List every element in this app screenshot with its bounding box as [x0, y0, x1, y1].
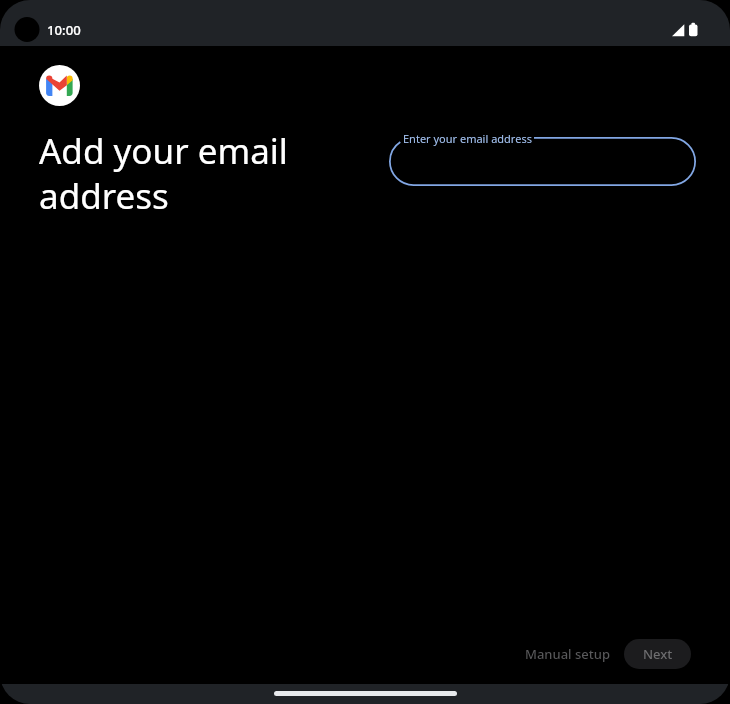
staticText: 10:00 — [47, 21, 81, 39]
staticText: Enter your email address — [403, 131, 532, 146]
button[interactable]: Next — [624, 639, 691, 669]
button[interactable]: Enter your email address — [389, 137, 696, 186]
staticText: Next — [643, 645, 673, 663]
button[interactable]: Manual setup — [514, 639, 621, 669]
button[interactable]: Home — [274, 691, 457, 696]
other: Gmail — [39, 65, 80, 106]
staticText: Add your email address — [39, 127, 359, 220]
staticText: Manual setup — [525, 645, 610, 663]
